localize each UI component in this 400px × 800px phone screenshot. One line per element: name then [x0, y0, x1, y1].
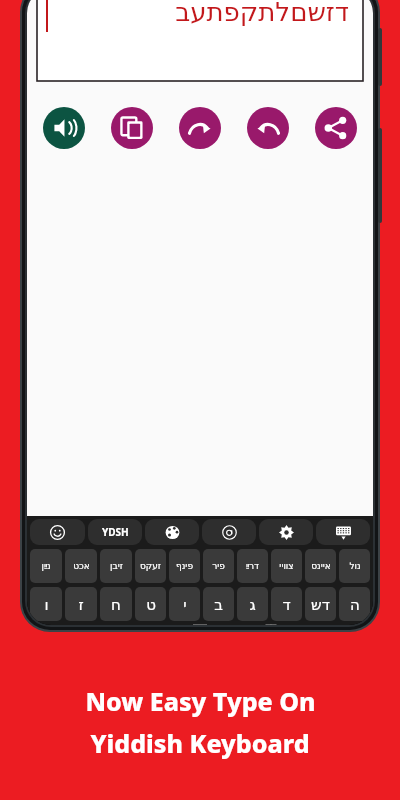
button[interactable]: זעקס [135, 549, 166, 583]
button[interactable]: י [169, 587, 200, 621]
staticText: דרײַ [246, 561, 259, 571]
button[interactable]: פיר [203, 549, 234, 583]
button[interactable]: ט [135, 587, 166, 621]
staticText: דש [311, 596, 330, 613]
button[interactable]: Email [202, 519, 256, 545]
button[interactable]: דזשםלתקפתעב [37, 0, 363, 81]
button[interactable]: אכט [65, 549, 97, 583]
staticText: ב [214, 596, 223, 613]
staticText: איינס [311, 561, 331, 571]
staticText: ג [249, 596, 256, 613]
staticText: ח [111, 596, 121, 613]
staticText: Yiddish Keyboard [90, 726, 310, 760]
button[interactable]: דש [305, 587, 336, 621]
button[interactable]: דרײַ [237, 549, 268, 583]
button[interactable]: איינס [305, 549, 336, 583]
button[interactable]: ד [271, 587, 302, 621]
staticText: אכט [73, 561, 90, 571]
staticText: ד [282, 596, 291, 613]
button[interactable]: Hide keyboard [316, 519, 370, 545]
button[interactable]: צוויי [271, 549, 302, 583]
button[interactable]: Undo [247, 107, 289, 149]
staticText: זיבן [110, 561, 123, 571]
button[interactable]: נײַן [30, 549, 62, 583]
button[interactable]: זיבן [100, 549, 132, 583]
button[interactable]: ח [100, 587, 132, 621]
staticText: פיר [212, 561, 225, 571]
staticText: דזשםלתקפתעב [175, 0, 349, 27]
staticText: י [183, 596, 187, 613]
button[interactable]: ז [65, 587, 97, 621]
staticText: ו [44, 596, 49, 613]
staticText: פינף [176, 561, 193, 571]
button[interactable]: Theme [145, 519, 199, 545]
button[interactable]: נול [339, 549, 370, 583]
button[interactable]: פינף [169, 549, 200, 583]
button[interactable]: Speak [43, 107, 85, 149]
button[interactable]: ה [339, 587, 370, 621]
button[interactable]: YDSH [88, 519, 142, 545]
staticText: נײַן [41, 561, 51, 571]
button[interactable]: Copy [111, 107, 153, 149]
staticText: ט [146, 596, 156, 613]
button[interactable]: Share [315, 107, 357, 149]
staticText: צוויי [279, 561, 294, 571]
button[interactable]: ו [30, 587, 62, 621]
button[interactable]: ג [237, 587, 268, 621]
staticText: YDSH [102, 525, 129, 539]
staticText: Now Easy Type On [85, 684, 316, 718]
staticText: נול [349, 561, 361, 571]
staticText: ז [78, 596, 84, 613]
button[interactable]: Redo [179, 107, 221, 149]
staticText: ה [350, 596, 360, 613]
button[interactable]: Emoji [30, 519, 85, 545]
button[interactable]: ב [203, 587, 234, 621]
staticText: זעקס [140, 561, 161, 571]
button[interactable]: Settings [259, 519, 313, 545]
